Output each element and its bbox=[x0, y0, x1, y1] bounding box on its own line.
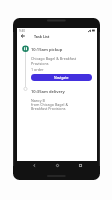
staticText: 1 order bbox=[31, 67, 44, 72]
button[interactable]: Home bbox=[54, 162, 60, 168]
staticText: 10:35am delivery bbox=[31, 89, 65, 95]
button[interactable]: Back bbox=[19, 32, 27, 40]
staticText: Nancy B bbox=[31, 98, 45, 103]
button[interactable]: Navigate bbox=[31, 74, 92, 81]
staticText: from Chicago Bagel & bbox=[31, 102, 69, 107]
staticText: Chicago Bagel & Breakfast bbox=[31, 56, 77, 61]
button[interactable]: Recent apps bbox=[77, 162, 83, 168]
staticText: 9:30 bbox=[19, 29, 25, 33]
staticText: 10:15am pickup bbox=[31, 47, 63, 53]
staticText: Breakfast Provisions bbox=[31, 106, 66, 111]
staticText: Navigate bbox=[54, 75, 69, 80]
staticText: Task List bbox=[34, 34, 50, 39]
staticText: Provisions bbox=[31, 61, 49, 66]
button[interactable]: Back bbox=[31, 162, 37, 168]
